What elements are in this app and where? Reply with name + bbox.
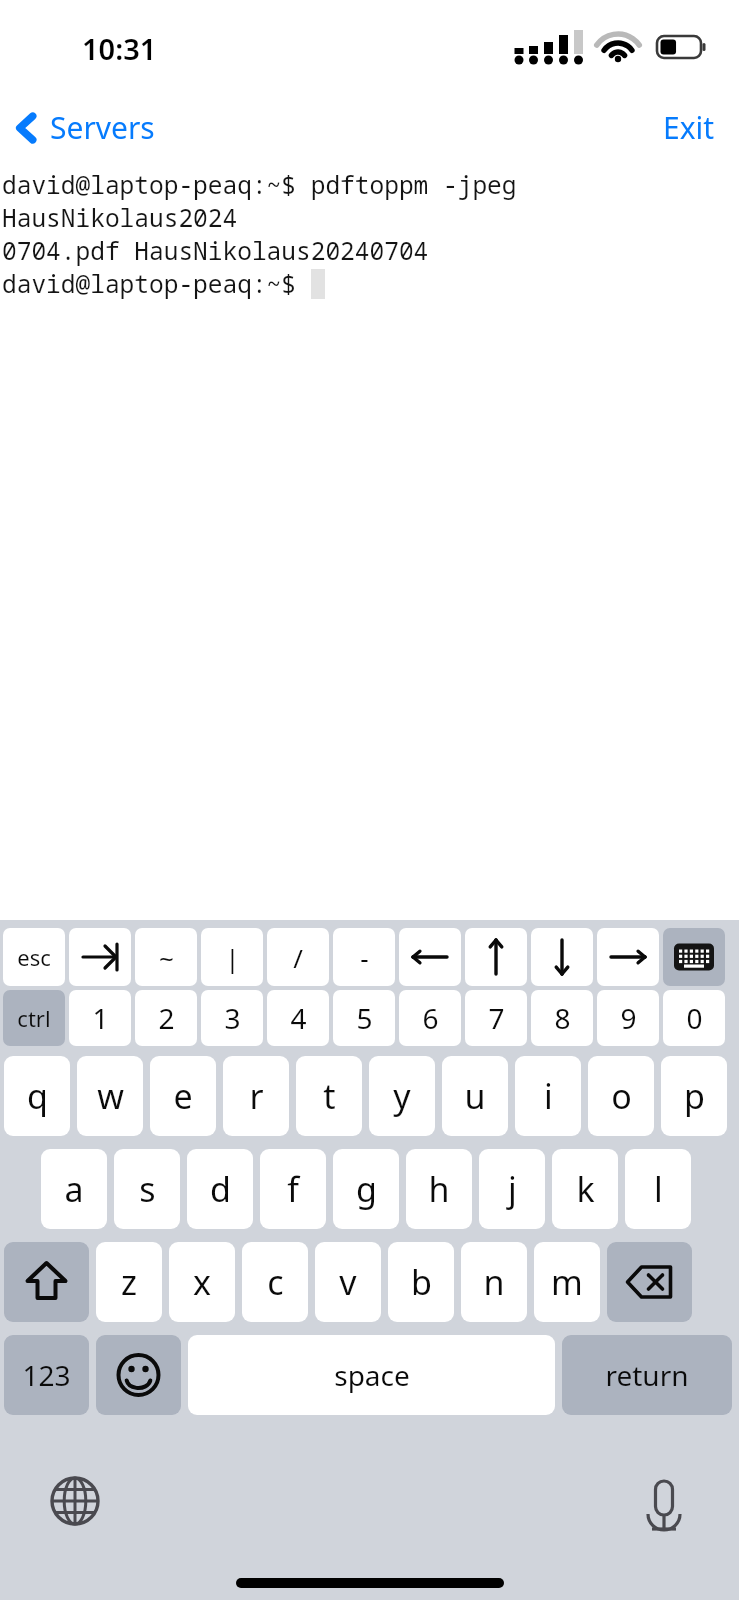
button[interactable]: g xyxy=(333,1149,399,1229)
button[interactable]: z xyxy=(96,1242,162,1322)
staticText: esc xyxy=(17,942,51,972)
button[interactable]: 2 xyxy=(135,990,197,1046)
button[interactable]: return xyxy=(562,1335,732,1415)
button[interactable]: Emoji xyxy=(96,1335,181,1415)
staticText: | xyxy=(225,940,240,975)
button[interactable]: ctrl xyxy=(3,990,65,1046)
button[interactable]: k xyxy=(552,1149,618,1229)
staticText: u xyxy=(464,1073,486,1119)
button[interactable]: n xyxy=(461,1242,527,1322)
staticText: r xyxy=(249,1073,264,1119)
staticText: 8 xyxy=(554,999,571,1037)
button[interactable]: / xyxy=(267,928,329,986)
staticText: j xyxy=(508,1166,517,1212)
button[interactable]: d xyxy=(187,1149,253,1229)
staticText: g xyxy=(356,1166,377,1212)
button[interactable]: t xyxy=(296,1056,362,1136)
button[interactable]: Tab xyxy=(69,928,131,986)
staticText: e xyxy=(173,1073,193,1119)
staticText: p xyxy=(684,1073,705,1119)
staticText: y xyxy=(393,1073,411,1119)
staticText: 4 xyxy=(290,999,307,1037)
button[interactable]: | xyxy=(201,928,263,986)
button[interactable]: r xyxy=(223,1056,289,1136)
button[interactable]: Shift xyxy=(4,1242,89,1322)
staticText: c xyxy=(267,1259,284,1305)
button[interactable]: 6 xyxy=(399,990,461,1046)
button[interactable]: m xyxy=(534,1242,600,1322)
staticText: / xyxy=(293,940,303,975)
staticText: Servers xyxy=(50,107,155,148)
staticText: 7 xyxy=(488,999,505,1037)
button[interactable]: 1 xyxy=(69,990,131,1046)
button[interactable]: 123 xyxy=(4,1335,89,1415)
button[interactable]: Up arrow xyxy=(465,928,527,986)
staticText: space xyxy=(334,1356,410,1394)
button[interactable]: Backspace xyxy=(607,1242,692,1322)
button[interactable]: f xyxy=(260,1149,326,1229)
staticText: q xyxy=(27,1073,48,1119)
button[interactable]: Left arrow xyxy=(399,928,461,986)
button[interactable]: space xyxy=(188,1335,555,1415)
staticText: ~ xyxy=(159,940,174,975)
staticText: l xyxy=(654,1166,663,1212)
staticText: a xyxy=(64,1166,84,1212)
button[interactable]: - xyxy=(333,928,395,986)
button[interactable]: 4 xyxy=(267,990,329,1046)
staticText: 2 xyxy=(158,999,175,1037)
staticText: f xyxy=(287,1166,299,1212)
button[interactable]: esc xyxy=(3,928,65,986)
button[interactable]: x xyxy=(169,1242,235,1322)
staticText: ctrl xyxy=(17,1003,51,1033)
button[interactable]: Hide keyboard xyxy=(663,928,725,986)
button[interactable]: v xyxy=(315,1242,381,1322)
staticText: 0 xyxy=(686,999,703,1037)
button[interactable]: p xyxy=(661,1056,727,1136)
staticText: t xyxy=(323,1073,336,1119)
staticText: s xyxy=(139,1166,156,1212)
button[interactable]: u xyxy=(442,1056,508,1136)
staticText: w xyxy=(97,1073,124,1119)
button[interactable]: 3 xyxy=(201,990,263,1046)
button[interactable]: a xyxy=(41,1149,107,1229)
button[interactable]: b xyxy=(388,1242,454,1322)
button[interactable]: 5 xyxy=(333,990,395,1046)
staticText: h xyxy=(428,1166,450,1212)
button[interactable]: Down arrow xyxy=(531,928,593,986)
button[interactable]: Dictation xyxy=(589,1459,739,1543)
button[interactable]: Servers xyxy=(14,107,155,148)
button[interactable]: j xyxy=(479,1149,545,1229)
staticText: x xyxy=(193,1259,211,1305)
button[interactable]: q xyxy=(4,1056,70,1136)
button[interactable]: 8 xyxy=(531,990,593,1046)
button[interactable]: 7 xyxy=(465,990,527,1046)
button[interactable]: c xyxy=(242,1242,308,1322)
button[interactable]: Change keyboard xyxy=(0,1459,150,1543)
button[interactable]: 9 xyxy=(597,990,659,1046)
button[interactable]: h xyxy=(406,1149,472,1229)
staticText: o xyxy=(611,1073,632,1119)
staticText: david@laptop-peaq:~$ pdftoppm -jpeg Haus… xyxy=(2,168,739,234)
staticText: return xyxy=(605,1356,689,1394)
button[interactable]: ~ xyxy=(135,928,197,986)
staticText: Exit xyxy=(663,107,715,148)
staticText: 1 xyxy=(92,999,109,1037)
button[interactable]: y xyxy=(369,1056,435,1136)
staticText: 9 xyxy=(620,999,637,1037)
staticText: b xyxy=(411,1259,432,1305)
staticText: 123 xyxy=(22,1356,71,1394)
button[interactable]: o xyxy=(588,1056,654,1136)
button[interactable]: s xyxy=(114,1149,180,1229)
button[interactable]: l xyxy=(625,1149,691,1229)
button[interactable]: Right arrow xyxy=(597,928,659,986)
button[interactable]: e xyxy=(150,1056,216,1136)
staticText: 5 xyxy=(356,999,373,1037)
button[interactable]: i xyxy=(515,1056,581,1136)
button[interactable]: Exit xyxy=(639,101,739,154)
button[interactable]: 0 xyxy=(663,990,725,1046)
staticText: david@laptop-peaq:~$ xyxy=(2,267,311,300)
staticText: 6 xyxy=(422,999,439,1037)
staticText: d xyxy=(210,1166,231,1212)
button[interactable]: w xyxy=(77,1056,143,1136)
staticText: k xyxy=(576,1166,595,1212)
